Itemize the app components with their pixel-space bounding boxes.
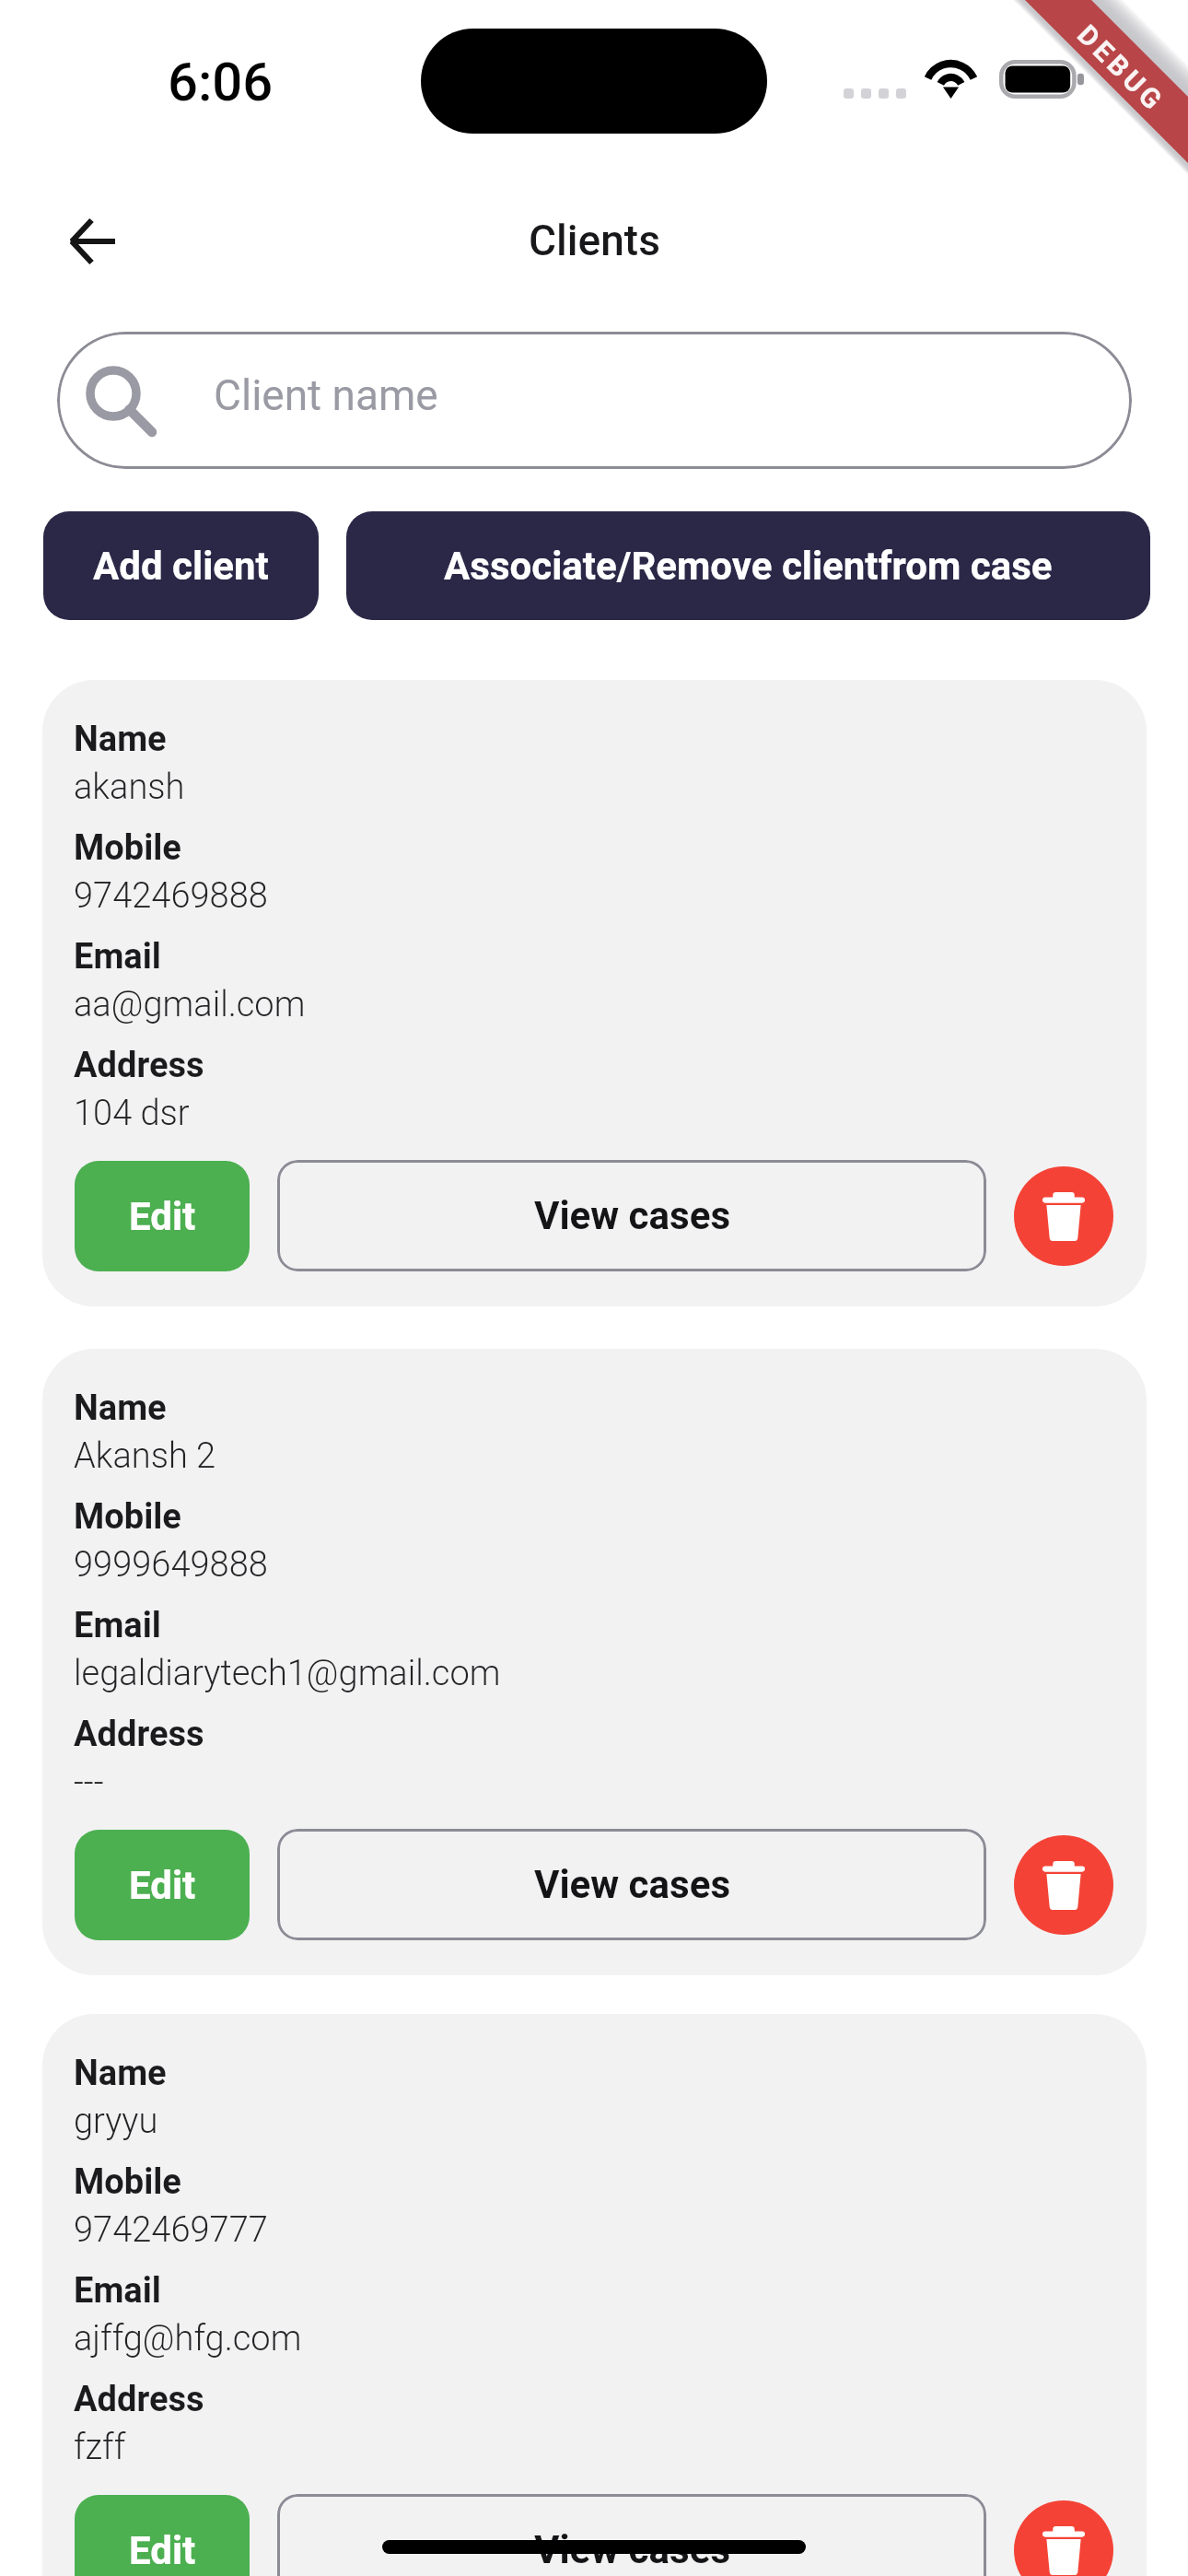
button[interactable]: Associate/Remove clientfrom case [346, 511, 1150, 620]
staticText: 9742469888 [74, 875, 268, 917]
staticText: DEBUG [1071, 19, 1171, 119]
staticText: aa@gmail.com [74, 984, 306, 1025]
staticText: fzff [74, 2427, 126, 2468]
staticText: Address [74, 1045, 204, 1086]
button[interactable]: Delete [1014, 1835, 1113, 1935]
staticText: Edit [129, 1194, 196, 1239]
staticText: Address [74, 2379, 204, 2420]
staticText: Name [74, 2053, 167, 2094]
staticText: 104 dsr [74, 1093, 190, 1134]
staticText: Name [74, 719, 167, 760]
staticText: legaldiarytech1@gmail.com [74, 1653, 501, 1694]
staticText: Associate/Remove clientfrom case [444, 544, 1053, 589]
button[interactable]: Add client [43, 511, 319, 620]
button[interactable]: View cases [277, 1829, 986, 1940]
staticText: Client name [214, 370, 438, 420]
staticText: Edit [129, 2528, 196, 2573]
button[interactable]: Delete [1014, 1166, 1113, 1266]
staticText: Mobile [74, 1496, 181, 1538]
staticText: gryyu [74, 2101, 158, 2142]
staticText: 9999649888 [74, 1544, 268, 1586]
staticText: Add client [93, 544, 269, 589]
staticText: 9742469777 [74, 2209, 268, 2251]
staticText: Name [74, 1388, 167, 1429]
staticText: View cases [534, 2527, 730, 2572]
staticText: 6:06 [168, 51, 274, 113]
staticText: --- [74, 1762, 104, 1803]
staticText: Edit [129, 1863, 196, 1908]
staticText: akansh [74, 767, 185, 808]
button[interactable]: Back [41, 190, 144, 293]
staticText: Clients [529, 216, 660, 265]
button[interactable]: View cases [277, 1160, 986, 1271]
staticText: View cases [534, 1193, 730, 1238]
button[interactable]: View cases [277, 2494, 986, 2576]
staticText: Email [74, 1605, 161, 1646]
button[interactable]: Edit [75, 1161, 250, 1271]
button[interactable]: Edit [75, 2495, 250, 2576]
button[interactable]: Client name [57, 332, 1132, 469]
staticText: Akansh 2 [74, 1435, 216, 1477]
staticText: View cases [534, 1862, 730, 1907]
staticText: ajffg@hfg.com [74, 2318, 302, 2359]
staticText: Mobile [74, 827, 181, 869]
staticText: Email [74, 2270, 161, 2312]
staticText: Address [74, 1714, 204, 1755]
staticText: Mobile [74, 2161, 181, 2203]
staticText: Email [74, 936, 161, 978]
button[interactable]: Delete [1014, 2500, 1113, 2576]
button[interactable]: Edit [75, 1830, 250, 1940]
